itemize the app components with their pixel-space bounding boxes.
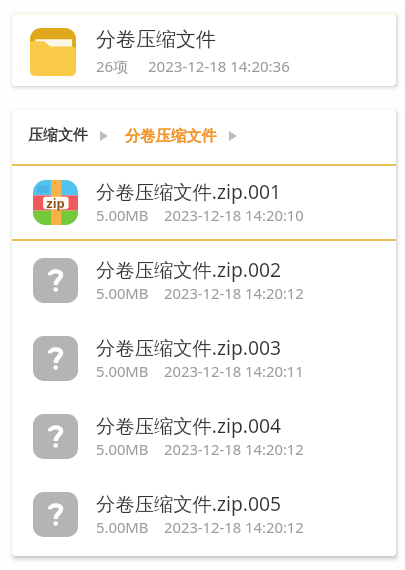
staticText: 分卷压缩文件.zip.004 [96,412,282,438]
staticText: 2023-12-18 14:20:11 [164,361,304,381]
button[interactable]: 压缩文件 [28,126,88,145]
button[interactable]: 分卷压缩文件.zip.005 [12,475,396,553]
staticText: zip [46,194,65,212]
button[interactable]: 分卷压缩文件.zip.003 [12,319,396,397]
staticText: 2023-12-18 14:20:12 [164,283,304,303]
staticText: 2023-12-18 14:20:12 [164,517,304,537]
staticText: 2023-12-18 14:20:36 [148,56,290,76]
staticText: 2023-12-18 14:20:10 [164,205,304,225]
staticText: 5.00MB [96,517,149,537]
staticText: 分卷压缩文件.zip.002 [96,256,282,282]
staticText: 26项 [96,56,129,76]
button[interactable]: 分卷压缩文件.zip.004 [12,397,396,475]
button[interactable]: 分卷压缩文件.zip.002 [12,241,396,319]
staticText: 分卷压缩文件.zip.003 [96,334,282,360]
staticText: 5.00MB [96,283,149,303]
staticText: 分卷压缩文件.zip.005 [96,490,282,516]
button[interactable]: 分卷压缩文件 [12,13,396,86]
staticText: 5.00MB [96,439,149,459]
staticText: 分卷压缩文件 [96,27,216,52]
staticText: 2023-12-18 14:20:12 [164,439,304,459]
staticText: 5.00MB [96,205,149,225]
staticText: 分卷压缩文件.zip.001 [96,178,282,204]
button[interactable]: 分卷压缩文件 [125,126,217,145]
staticText: 5.00MB [96,361,149,381]
button[interactable]: zip [12,166,396,239]
